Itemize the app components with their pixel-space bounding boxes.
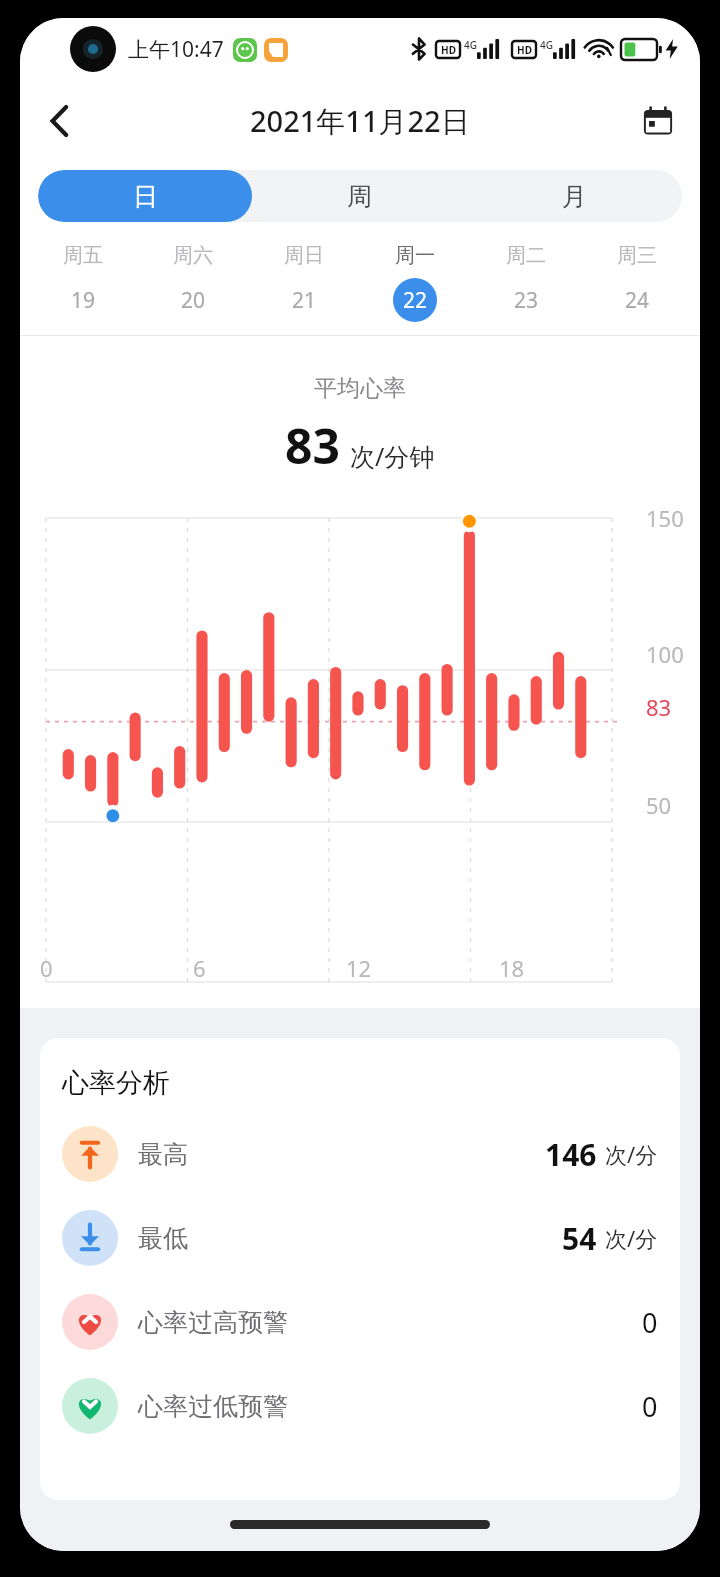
staticText: 平均心率 — [20, 374, 700, 403]
staticText: 4G — [464, 38, 477, 52]
staticText: 心率过低预警 — [138, 1391, 288, 1422]
button[interactable]: 日 — [38, 170, 252, 222]
staticText: 最高 — [138, 1139, 188, 1170]
staticText: 0 — [40, 953, 53, 983]
staticText: HD — [517, 43, 532, 57]
button[interactable]: Calendar — [630, 93, 686, 149]
staticText: 150 — [646, 503, 684, 533]
button[interactable]: 周日 — [248, 243, 359, 322]
staticText: 2021年11月22日 — [250, 101, 470, 141]
staticText: 6 — [193, 953, 206, 983]
button[interactable]: 最高 — [40, 1112, 680, 1196]
staticText: 周一 — [395, 243, 435, 268]
staticText: 21 — [292, 286, 317, 315]
staticText: 次/分 — [605, 1223, 658, 1253]
button[interactable]: 心率过高预警 — [40, 1280, 680, 1364]
button[interactable]: 心率过低预警 — [40, 1364, 680, 1448]
staticText: 0 — [642, 1304, 658, 1341]
staticText: 上午10:47 — [128, 35, 224, 64]
staticText: 18 — [499, 953, 525, 983]
staticText: 19 — [71, 286, 96, 315]
button[interactable]: 周一 — [359, 243, 470, 322]
staticText: 54 — [562, 1218, 597, 1259]
staticText: 最低 — [138, 1223, 188, 1254]
staticText: 24 — [625, 286, 650, 315]
staticText: 100 — [646, 639, 684, 669]
button[interactable]: 周六 — [138, 243, 248, 322]
staticText: 83 — [646, 692, 672, 722]
staticText: 日 — [133, 181, 158, 212]
staticText: 次/分 — [605, 1139, 658, 1169]
staticText: 周六 — [173, 243, 213, 268]
button[interactable]: 周三 — [581, 243, 692, 322]
staticText: 4G — [540, 38, 553, 52]
staticText: 周 — [347, 181, 372, 212]
button[interactable]: 周 — [252, 170, 467, 222]
staticText: 周日 — [284, 243, 324, 268]
button[interactable]: 周五 — [28, 243, 138, 322]
button[interactable]: 周二 — [470, 243, 581, 322]
staticText: 月 — [562, 181, 587, 212]
staticText: 83 — [285, 413, 340, 478]
staticText: 次/分钟 — [350, 439, 435, 473]
staticText: 23 — [514, 286, 539, 315]
staticText: 0 — [642, 1388, 658, 1425]
button[interactable]: 月 — [467, 170, 682, 222]
staticText: 50 — [646, 790, 672, 820]
staticText: 20 — [181, 286, 206, 315]
staticText: 周三 — [617, 243, 657, 268]
button[interactable]: 最低 — [40, 1196, 680, 1280]
staticText: 心率过高预警 — [138, 1307, 288, 1338]
staticText: 周五 — [63, 243, 103, 268]
staticText: HD — [441, 43, 456, 57]
staticText: 146 — [545, 1134, 597, 1175]
staticText: 12 — [346, 953, 372, 983]
staticText: 周二 — [506, 243, 546, 268]
staticText: 22 — [403, 286, 428, 315]
button[interactable]: Back — [32, 93, 88, 149]
staticText: 心率分析 — [62, 1066, 170, 1100]
